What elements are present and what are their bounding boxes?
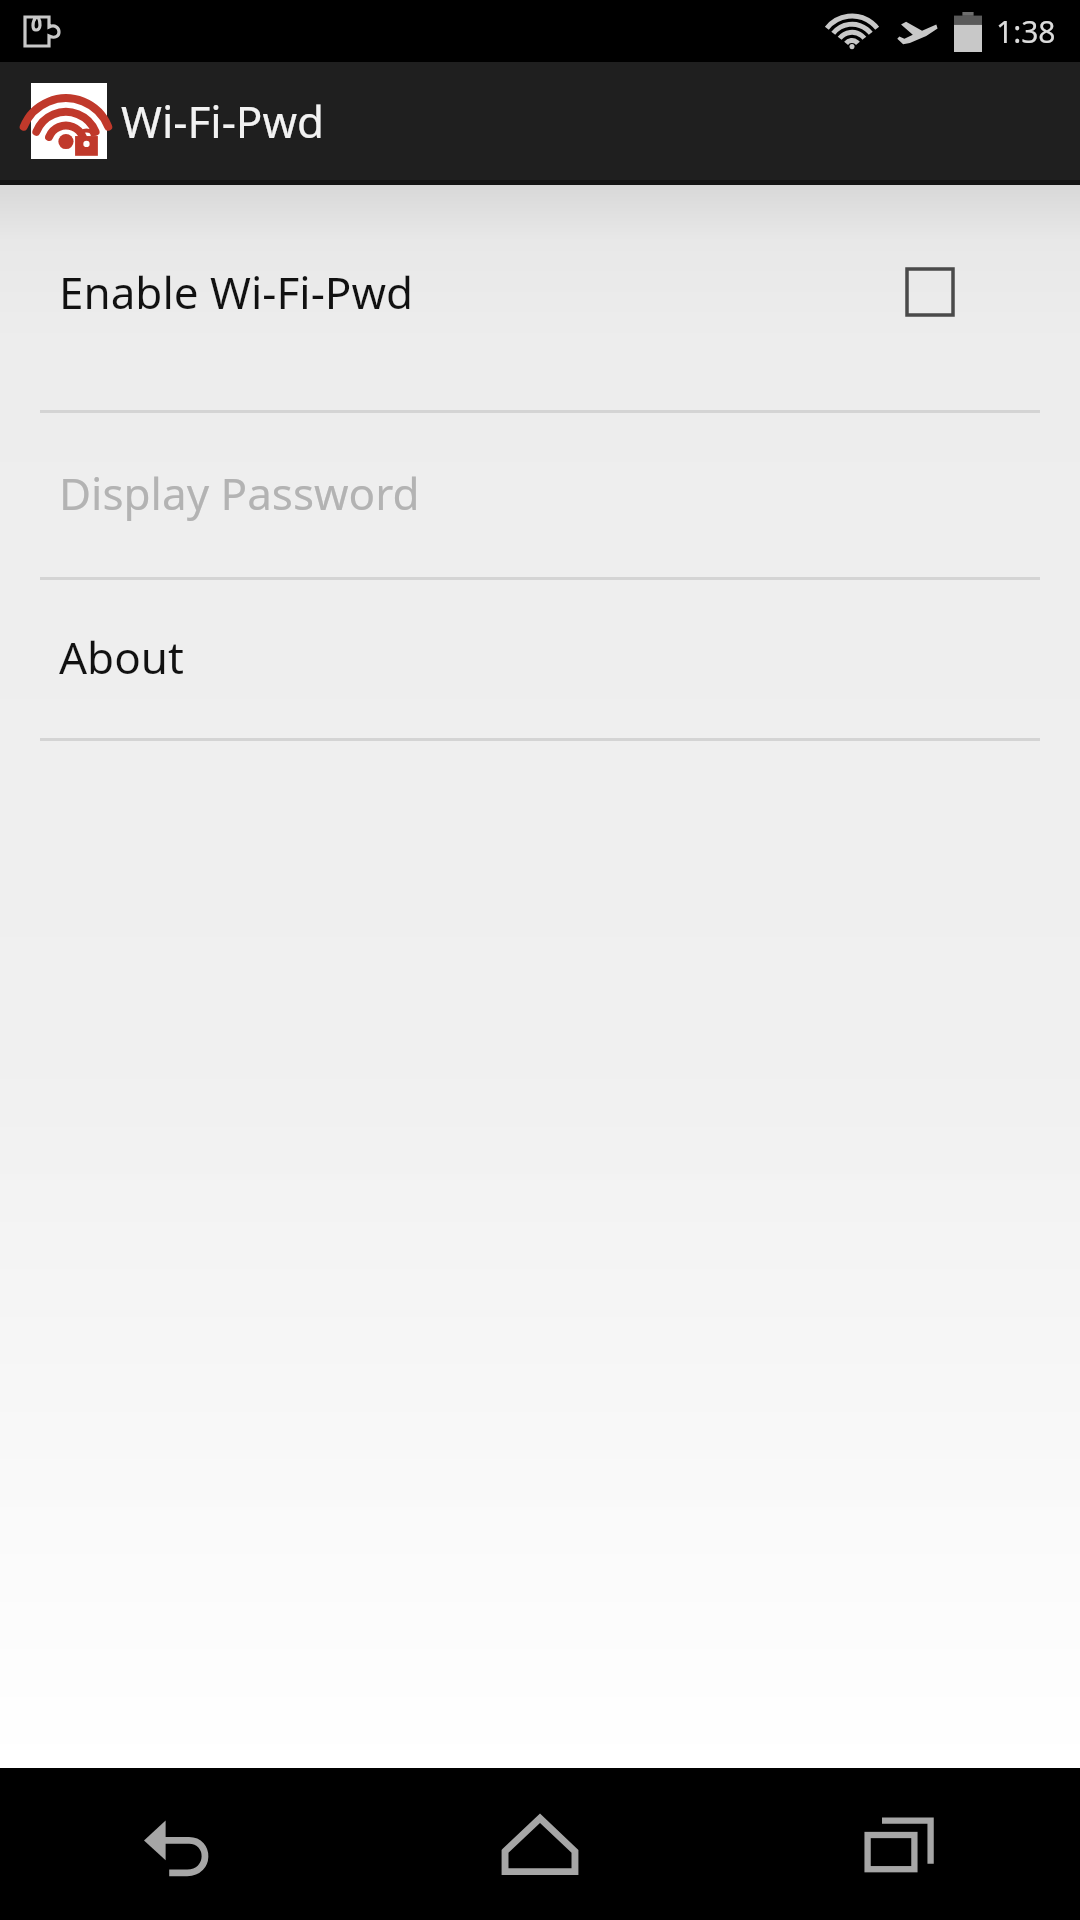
button[interactable]: Recent apps xyxy=(720,1768,1080,1920)
staticText: About xyxy=(59,627,184,687)
button[interactable]: Enable Wi-Fi-Pwd xyxy=(0,185,1080,410)
staticText: Display Password xyxy=(59,463,420,523)
staticText: Wi-Fi-Pwd xyxy=(121,91,325,151)
button[interactable]: Home xyxy=(360,1768,720,1920)
button[interactable]: Back xyxy=(0,1768,360,1920)
button[interactable]: About xyxy=(0,580,1080,738)
staticText: 1:38 xyxy=(996,11,1056,52)
staticText: Enable Wi-Fi-Pwd xyxy=(59,262,414,322)
button[interactable]: Display Password xyxy=(0,413,1080,577)
